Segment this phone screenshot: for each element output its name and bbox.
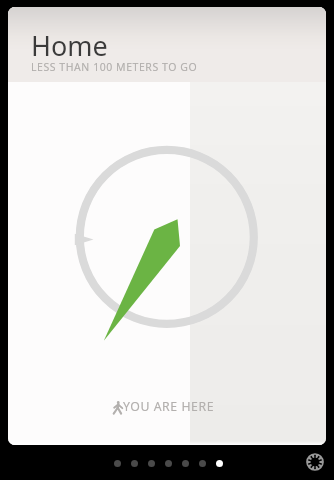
button[interactable]: YOU ARE HERE: [108, 390, 230, 422]
button[interactable]: [131, 460, 138, 467]
button[interactable]: [165, 460, 172, 467]
button[interactable]: [182, 460, 189, 467]
button[interactable]: [199, 460, 206, 467]
button[interactable]: [148, 460, 155, 467]
button[interactable]: [216, 460, 223, 467]
staticText: YOU ARE HERE: [123, 398, 215, 415]
staticText: Home: [31, 27, 108, 64]
staticText: LESS THAN 100 METERS TO GO: [31, 60, 198, 74]
button[interactable]: Settings: [303, 450, 327, 474]
button[interactable]: [114, 460, 121, 467]
